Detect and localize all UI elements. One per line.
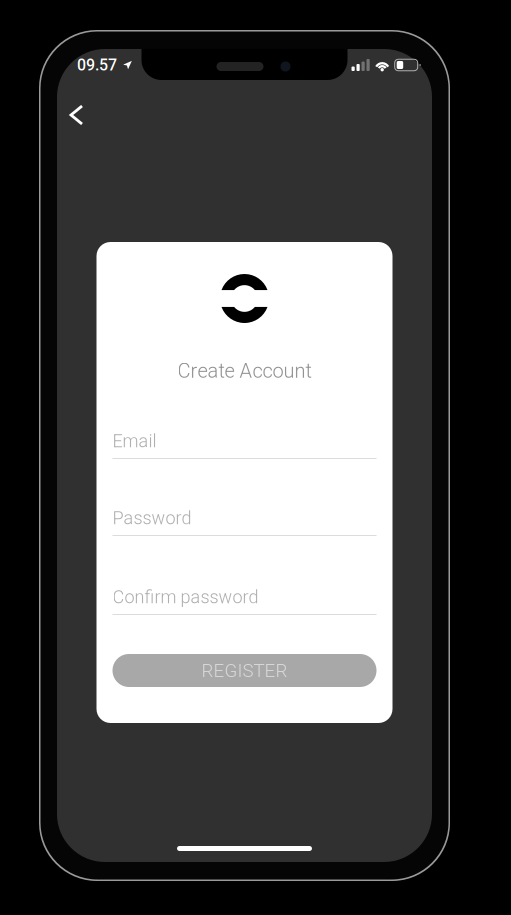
staticText: REGISTER [201,660,287,681]
staticText: Create Account [177,359,311,383]
button[interactable]: REGISTER [112,654,376,687]
staticText: 09.57 [77,56,117,74]
staticText: Password [112,507,191,529]
staticText: Email [112,430,156,452]
button[interactable]: Back [60,97,93,133]
staticText: Confirm password [112,586,258,608]
